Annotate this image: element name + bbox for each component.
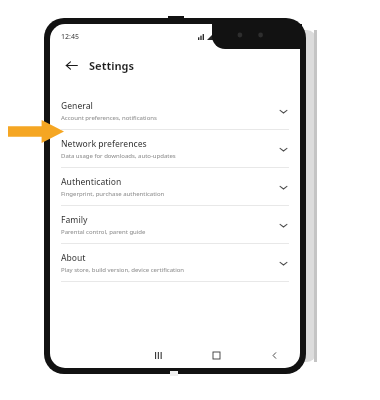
staticText: General xyxy=(61,100,93,112)
staticText: Settings xyxy=(89,58,135,73)
button[interactable]: Authentication xyxy=(50,168,300,205)
staticText: Network preferences xyxy=(61,138,147,150)
other: Expand Authentication xyxy=(275,179,291,195)
button[interactable]: Back xyxy=(266,347,282,363)
other: Expand Family xyxy=(275,217,291,233)
other: Expand General xyxy=(275,103,291,119)
button[interactable]: Network preferences xyxy=(50,130,300,167)
staticText: Account preferences, notifications xyxy=(61,114,157,122)
button[interactable]: Family xyxy=(50,206,300,243)
button[interactable]: General xyxy=(50,92,300,129)
button[interactable]: Recents xyxy=(150,347,166,363)
staticText: Authentication xyxy=(61,176,122,188)
staticText: 12:45 xyxy=(61,32,79,42)
other: Expand About xyxy=(275,255,291,271)
staticText: Data usage for downloads, auto-updates xyxy=(61,152,176,160)
button[interactable]: Home xyxy=(208,347,224,363)
staticText: About xyxy=(61,252,86,264)
button[interactable]: About xyxy=(50,244,300,281)
button[interactable]: Back xyxy=(61,55,81,75)
staticText: Parental control, parent guide xyxy=(61,228,146,236)
staticText: Family xyxy=(61,214,88,226)
staticText: Fingerprint, purchase authentication xyxy=(61,190,165,198)
staticText: Play store, build version, device certif… xyxy=(61,266,185,274)
other: Expand Network preferences xyxy=(275,141,291,157)
